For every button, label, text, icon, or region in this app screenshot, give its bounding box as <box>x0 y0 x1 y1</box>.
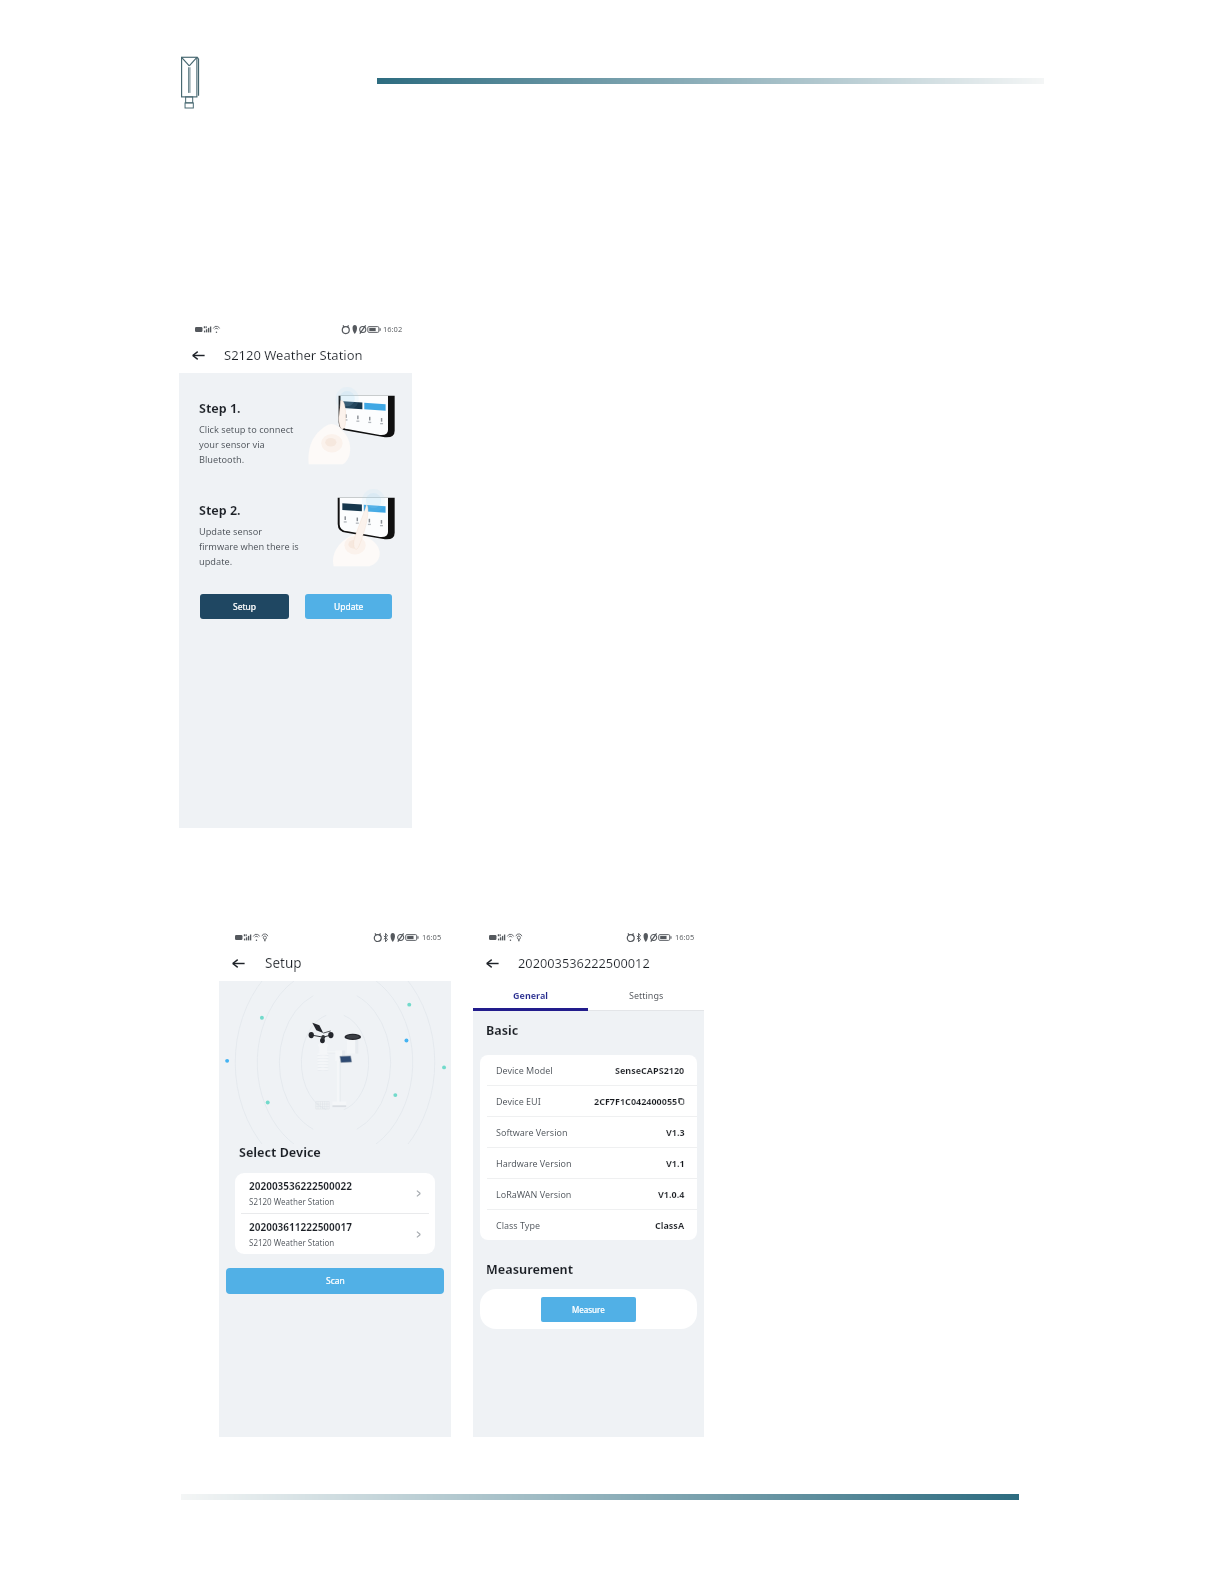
staticText: Class Type <box>496 1219 541 1231</box>
button[interactable]: Back <box>484 955 500 971</box>
staticText: Settings <box>629 989 664 1001</box>
staticText: LoRaWAN Version <box>496 1188 572 1200</box>
staticText: Setup <box>265 954 302 972</box>
other: Open device <box>414 1189 423 1198</box>
staticText: 202003536222500022 <box>249 1179 352 1193</box>
staticText: Step 1. <box>199 400 241 417</box>
button[interactable]: Setup <box>200 594 289 619</box>
staticText: S2120 Weather Station <box>249 1196 335 1207</box>
staticText: V1.0.4 <box>658 1188 685 1200</box>
button[interactable]: Back <box>230 955 246 971</box>
staticText: Step 2. <box>199 502 241 519</box>
button[interactable]: Update <box>305 594 392 619</box>
staticText: 16:02 <box>383 324 403 334</box>
staticText: 16:05 <box>422 932 442 942</box>
staticText: V1.1 <box>666 1157 685 1169</box>
button[interactable]: Back <box>190 347 206 363</box>
staticText: 202003536222500012 <box>518 954 650 971</box>
staticText: ClassA <box>655 1219 685 1231</box>
staticText: Software Version <box>496 1126 568 1138</box>
button[interactable]: General <box>473 981 588 1008</box>
staticText: 2CF7F1C042400055 <box>594 1095 678 1107</box>
button[interactable]: Copy device EUI <box>678 1098 685 1105</box>
button[interactable]: Scan <box>226 1268 444 1294</box>
staticText: Measure <box>572 1304 605 1315</box>
staticText: Measurement <box>486 1261 574 1278</box>
staticText: General <box>513 989 549 1001</box>
staticText: SenseCAPS2120 <box>615 1064 685 1076</box>
staticText: Hardware Version <box>496 1157 572 1169</box>
button[interactable]: 202003611222500017 <box>235 1214 435 1254</box>
staticText: 202003611222500017 <box>249 1220 352 1234</box>
staticText: Setup <box>233 601 257 613</box>
staticText: Device EUI <box>496 1095 541 1107</box>
staticText: S2120 Weather Station <box>224 346 363 364</box>
staticText: S2120 Weather Station <box>249 1237 335 1248</box>
staticText: V1.3 <box>666 1126 685 1138</box>
button[interactable]: Settings <box>588 981 704 1008</box>
other: Open device <box>414 1230 423 1239</box>
button[interactable]: 202003536222500022 <box>235 1173 435 1213</box>
staticText: Basic <box>486 1022 519 1039</box>
staticText: Update sensor firmware when there is upd… <box>199 525 299 567</box>
staticText: Scan <box>326 1275 345 1287</box>
staticText: 16:05 <box>675 932 695 942</box>
staticText: Update <box>334 601 364 613</box>
staticText: Select Device <box>239 1144 321 1161</box>
staticText: Device Model <box>496 1064 553 1076</box>
button[interactable]: Measure <box>541 1297 636 1322</box>
staticText: Click setup to connect your sensor via B… <box>199 423 294 465</box>
